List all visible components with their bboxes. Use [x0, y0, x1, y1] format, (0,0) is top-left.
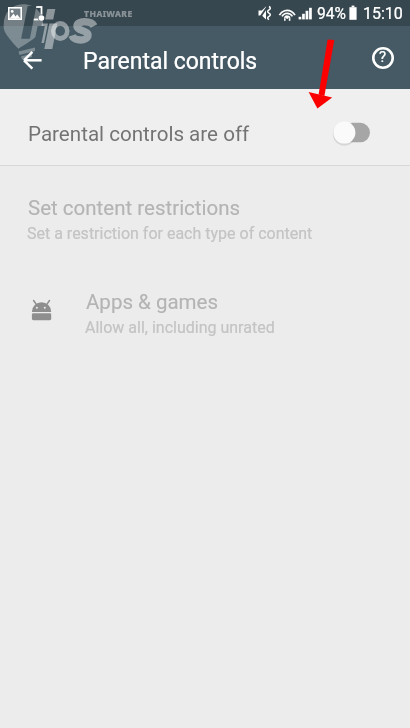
staticText: Allow all, including unrated [85, 318, 275, 337]
staticText: Set content restrictions [28, 196, 241, 220]
button[interactable]: Parental controls are off [0, 89, 410, 165]
staticText: ? [379, 48, 387, 66]
staticText: Parental controls are off [28, 122, 250, 146]
button[interactable]: Apps & games [0, 243, 410, 363]
button[interactable]: Help [360, 35, 405, 80]
button[interactable]: Back [11, 38, 56, 83]
staticText: 15:10 [363, 4, 403, 23]
staticText: THAIWARE [84, 8, 133, 20]
staticText: Apps & games [86, 290, 218, 314]
staticText: 94% [317, 5, 346, 23]
staticText: Parental controls [83, 48, 258, 75]
staticText: Set a restriction for each type of conte… [27, 224, 313, 243]
